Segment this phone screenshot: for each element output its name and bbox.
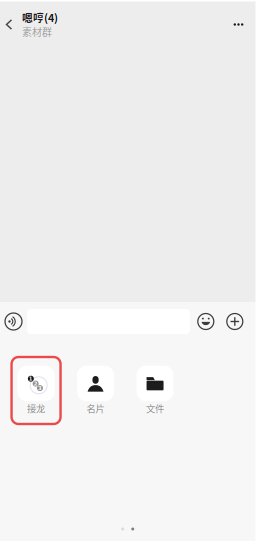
- button[interactable]: Emoji: [190, 302, 222, 341]
- staticText: 文件: [146, 401, 164, 415]
- staticText: 嗯哼(4): [22, 10, 58, 25]
- button[interactable]: Voice message: [0, 302, 27, 341]
- staticText: 1: [29, 376, 33, 382]
- button[interactable]: More: [221, 0, 255, 41]
- button[interactable]: 文件: [125, 364, 185, 417]
- button[interactable]: 1: [6, 364, 66, 417]
- staticText: 接龙: [27, 401, 45, 415]
- staticText: 2: [34, 380, 38, 387]
- button[interactable]: Back: [0, 0, 18, 41]
- button[interactable]: More options: [222, 302, 248, 341]
- staticText: 3: [38, 385, 42, 391]
- button[interactable]: 名片: [66, 364, 125, 417]
- staticText: 名片: [86, 401, 104, 415]
- staticText: 素材群: [22, 24, 52, 39]
